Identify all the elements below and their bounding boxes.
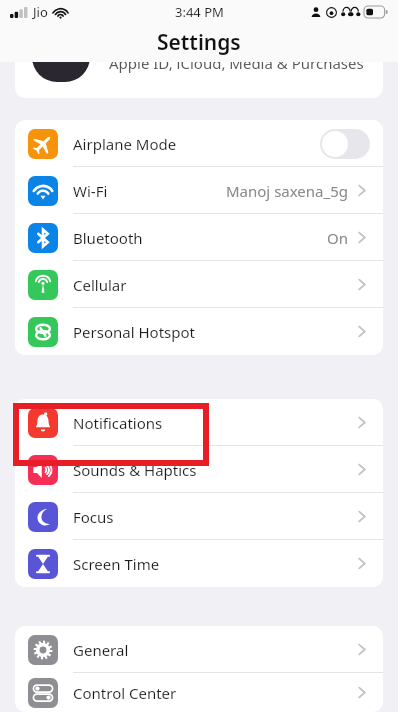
staticText: Manoj saxena_5g (226, 181, 348, 201)
button[interactable]: Apple ID, iCloud, Media & Purchases (15, 48, 383, 98)
staticText: Screen Time (73, 554, 160, 574)
button[interactable]: Screen Time (15, 540, 383, 587)
staticText: 3:44 PM (175, 3, 224, 21)
staticText: Settings (157, 28, 241, 57)
button[interactable]: Sounds & Haptics (15, 446, 383, 493)
button[interactable]: Airplane Mode (15, 120, 383, 167)
staticText: Airplane Mode (73, 134, 177, 154)
staticText: Personal Hotspot (73, 322, 195, 342)
staticText: Wi-Fi (73, 181, 108, 201)
staticText: Notifications (73, 413, 163, 433)
staticText: Cellular (73, 275, 127, 295)
staticText: Bluetooth (73, 228, 143, 248)
button[interactable]: Airplane Mode toggle (320, 129, 370, 159)
staticText: Jio (33, 3, 48, 21)
button[interactable]: Bluetooth (15, 214, 383, 261)
staticText: On (327, 228, 348, 248)
button[interactable]: General (15, 626, 383, 673)
button[interactable]: Control Center (15, 673, 383, 712)
button[interactable]: Focus (15, 493, 383, 540)
staticText: Focus (73, 507, 114, 527)
staticText: Sounds & Haptics (73, 460, 197, 480)
button[interactable]: Wi-Fi (15, 167, 383, 214)
button[interactable]: Notifications (15, 399, 383, 446)
staticText: Control Center (73, 683, 177, 703)
button[interactable]: Cellular (15, 261, 383, 308)
staticText: General (73, 640, 129, 660)
staticText: Apple ID, iCloud, Media & Purchases (109, 53, 364, 73)
button[interactable]: Personal Hotspot (15, 308, 383, 355)
